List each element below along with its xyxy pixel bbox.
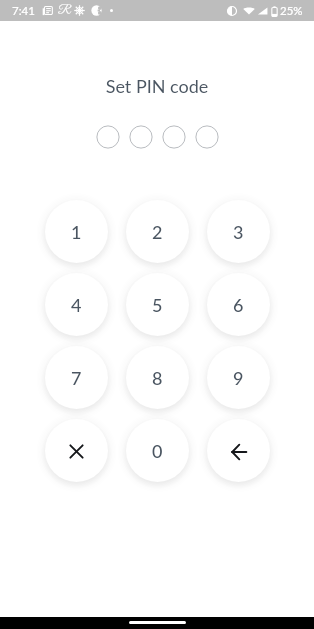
button[interactable]: 6 <box>207 273 270 336</box>
staticText: 2 <box>152 221 163 243</box>
staticText: Set PIN code <box>0 75 314 97</box>
staticText: 25% <box>280 4 303 18</box>
staticText: 6 <box>233 294 244 316</box>
staticText: 1 <box>71 221 82 243</box>
staticText: 7:41 <box>12 4 35 18</box>
staticText: 9 <box>233 367 244 389</box>
button[interactable]: 9 <box>207 346 270 409</box>
staticText: 4 <box>71 294 82 316</box>
button[interactable]: 3 <box>207 200 270 263</box>
staticText: 8 <box>152 367 163 389</box>
staticText: 5 <box>152 294 163 316</box>
button[interactable]: 8 <box>126 346 189 409</box>
button[interactable]: Backspace <box>207 419 270 482</box>
button[interactable]: Clear <box>45 419 108 482</box>
button[interactable]: 4 <box>45 273 108 336</box>
staticText: 7 <box>71 367 82 389</box>
button[interactable]: 0 <box>126 419 189 482</box>
staticText: R <box>58 3 71 18</box>
button[interactable]: 7 <box>45 346 108 409</box>
button[interactable]: 1 <box>45 200 108 263</box>
staticText: 0 <box>152 440 163 462</box>
staticText: 3 <box>233 221 244 243</box>
button[interactable]: 5 <box>126 273 189 336</box>
button[interactable]: 2 <box>126 200 189 263</box>
